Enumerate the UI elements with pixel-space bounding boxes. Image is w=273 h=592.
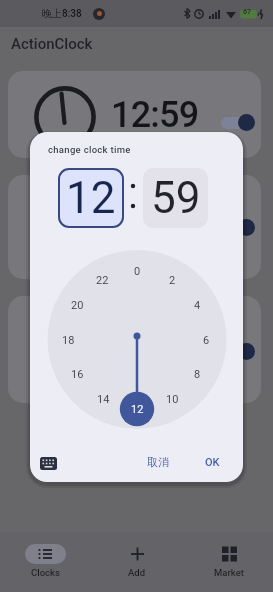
staticText: 20 [71, 299, 84, 312]
staticText: Clocks [31, 567, 60, 578]
button[interactable]: 12:59 [8, 175, 261, 279]
staticText: 6 [203, 334, 210, 347]
button[interactable]: OK [190, 446, 235, 478]
staticText: 12:59 [111, 94, 199, 136]
staticText: 晚上8:38 [42, 7, 82, 20]
button[interactable] [221, 345, 250, 357]
staticText: OK [205, 456, 220, 469]
staticText: 18 [62, 334, 75, 347]
staticText: change clock time [48, 144, 131, 155]
button[interactable]: 12:59 [8, 296, 261, 403]
button[interactable]: Add [97, 534, 177, 586]
staticText: 67 [243, 8, 252, 16]
button[interactable]: 59 [143, 168, 208, 228]
staticText: 4 [194, 299, 201, 312]
staticText: 16 [71, 368, 84, 381]
staticText: 10 [166, 393, 179, 406]
staticText: 22 [96, 274, 109, 287]
staticText: Add [128, 567, 146, 578]
staticText: 14 [97, 393, 110, 406]
button[interactable] [221, 117, 250, 129]
button[interactable] [221, 221, 250, 233]
staticText: Market [214, 567, 244, 578]
staticText: 12:59 [111, 319, 199, 361]
button[interactable] [47, 249, 227, 429]
staticText: 取消 [147, 455, 169, 469]
staticText: 12:59 [111, 198, 199, 240]
staticText: 2 [169, 274, 176, 287]
staticText: 59 [151, 172, 201, 224]
staticText: 12 [131, 403, 144, 416]
button[interactable]: Market [189, 534, 269, 586]
button[interactable]: 取消 [130, 446, 185, 478]
button[interactable]: 12 [58, 168, 124, 228]
staticText: 0 [134, 265, 141, 278]
staticText: 8 [194, 368, 201, 381]
button[interactable]: 12:59 [8, 71, 261, 158]
button[interactable] [35, 450, 61, 476]
staticText: 12 [66, 172, 116, 224]
staticText: ActionClock [11, 35, 93, 53]
button[interactable]: Clocks [5, 534, 85, 586]
